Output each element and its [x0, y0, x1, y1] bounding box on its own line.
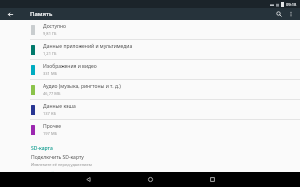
- button[interactable]: Recent apps: [195, 172, 229, 187]
- staticText: 1,21 ГБ: [43, 51, 57, 56]
- button[interactable]: Back: [71, 172, 105, 187]
- button[interactable]: Back: [4, 8, 16, 20]
- staticText: Прочее: [43, 123, 62, 130]
- staticText: 9,81 ГБ: [43, 31, 57, 36]
- staticText: 331 МБ: [43, 71, 57, 76]
- button[interactable]: More options: [285, 8, 297, 20]
- staticText: 09:18: [286, 2, 297, 7]
- staticText: 137 КБ: [43, 111, 56, 116]
- staticText: Изображения и видео: [43, 63, 97, 70]
- staticText: Аудио (музыка, рингтоны и т. д.): [43, 83, 121, 90]
- button[interactable]: Подключить SD-карту: [0, 153, 300, 169]
- staticText: Доступно: [43, 23, 67, 30]
- staticText: Подключить SD-карту: [31, 154, 84, 161]
- staticText: SD-карта: [31, 145, 53, 152]
- staticText: Данные приложений и мультимедиа: [43, 43, 133, 50]
- staticText: Извлеките её перед удалением: [31, 162, 92, 167]
- button[interactable]: Аудио (музыка, рингтоны и т. д.): [0, 80, 300, 99]
- button[interactable]: Данные кэша: [0, 100, 300, 119]
- staticText: Данные кэша: [43, 103, 76, 110]
- button[interactable]: Изображения и видео: [0, 60, 300, 79]
- button[interactable]: Search: [273, 8, 285, 20]
- button[interactable]: Home: [133, 172, 167, 187]
- staticText: Память: [30, 10, 53, 18]
- button[interactable]: Данные приложений и мультимедиа: [0, 40, 300, 59]
- button[interactable]: Прочее: [0, 120, 300, 139]
- button[interactable]: Доступно: [0, 20, 300, 39]
- staticText: 197 МБ: [43, 131, 57, 136]
- staticText: 46,77 МБ: [43, 91, 61, 96]
